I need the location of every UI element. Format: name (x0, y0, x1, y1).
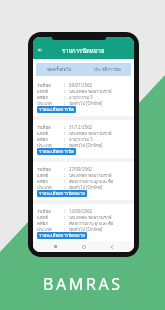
staticText: คลินิก (37, 220, 49, 226)
staticText: วันที่นัด (37, 82, 52, 88)
staticText: : (64, 184, 66, 190)
staticText: แพทย์ (37, 172, 49, 178)
staticText: รายละเอียดการนัดหมาย (39, 190, 85, 197)
staticText: : (64, 220, 66, 226)
button[interactable]: วันที่นัด (33, 78, 134, 116)
staticText: รายละเอียดการนัด (39, 148, 74, 155)
staticText: แพทย์ (37, 214, 49, 220)
button[interactable]: วันที่นัด (33, 162, 134, 200)
staticText: 27/09/2562 (69, 166, 130, 172)
staticText: คลินิก (37, 178, 49, 184)
staticText: นัดครั้งต่อไป (47, 66, 72, 73)
staticText: นัดทั่วไป [Online] (69, 142, 130, 148)
staticText: นัดทั่วไป [Online] (69, 226, 130, 232)
staticText: นัดทั่วไป [Online] (69, 184, 130, 190)
button[interactable]: Recents (50, 241, 61, 252)
staticText: แพทย์ (37, 130, 49, 136)
staticText: : (64, 178, 66, 184)
staticText: : (64, 142, 66, 148)
staticText: รายละเอียดการนัดหมาย (39, 232, 85, 239)
staticText: ประเภท (37, 142, 52, 148)
staticText: 09/07/2562 (69, 82, 130, 88)
button[interactable]: ประวัติการนัด (83, 63, 131, 76)
staticText: นัดทั่วไป [Online] (69, 100, 130, 106)
staticText: 13/09/2562 (69, 208, 130, 214)
staticText: นพ.สหพล พลธรรมรักษ์ (69, 172, 130, 178)
staticText: : (64, 208, 66, 214)
staticText: อายุรกรรม 5 (69, 136, 130, 142)
staticText: : (64, 82, 66, 88)
staticText: วันที่นัด (37, 124, 52, 130)
staticText: : (64, 130, 66, 136)
staticText: : (64, 88, 66, 94)
staticText: 31/12/2562 (69, 124, 130, 130)
staticText: คลินิก (37, 94, 49, 100)
staticText: นพ.สหพล พลธรรมรักษ์ (69, 88, 130, 94)
staticText: วันที่นัด (37, 208, 52, 214)
staticText: BAMRAS (43, 273, 123, 295)
button[interactable]: รายละเอียดการนัดหมาย (37, 232, 87, 239)
staticText: : (64, 124, 66, 130)
staticText: นพ.สหพล พลธรรมรักษ์ (69, 214, 130, 220)
button[interactable]: รายละเอียดการนัด (37, 148, 76, 155)
staticText: คลินิก (37, 136, 49, 142)
staticText: ประเภท (37, 100, 52, 106)
button[interactable]: Home (78, 241, 89, 252)
button[interactable]: รายละเอียดการนัด (37, 106, 76, 113)
staticText: ประวัติการนัด (94, 66, 121, 73)
staticText: แพทย์ (37, 88, 49, 94)
staticText: อายุรกรรม 5 (69, 94, 130, 100)
button[interactable]: วันที่นัด (33, 204, 134, 241)
staticText: ศัลยกรรมกระดูกและข้อ (69, 178, 130, 184)
staticText: : (64, 214, 66, 220)
staticText: นพ.สหพล พลธรรมรักษ์ (69, 130, 130, 136)
staticText: : (64, 94, 66, 100)
staticText: : (64, 100, 66, 106)
staticText: : (64, 166, 66, 172)
button[interactable]: Back (106, 241, 117, 252)
button[interactable]: Back (33, 41, 46, 59)
staticText: ประเภท (37, 226, 52, 232)
button[interactable]: นัดครั้งต่อไป (36, 63, 83, 76)
staticText: : (64, 226, 66, 232)
button[interactable]: วันที่นัด (33, 120, 134, 158)
staticText: ประเภท (37, 184, 52, 190)
staticText: ศัลยกรรมกระดูกและข้อ (69, 220, 130, 226)
staticText: รายละเอียดการนัด (39, 106, 74, 113)
staticText: รายการนัดหมาย (62, 46, 105, 55)
staticText: : (64, 136, 66, 142)
button[interactable]: รายละเอียดการนัดหมาย (37, 190, 87, 197)
staticText: วันที่นัด (37, 166, 52, 172)
staticText: : (64, 172, 66, 178)
